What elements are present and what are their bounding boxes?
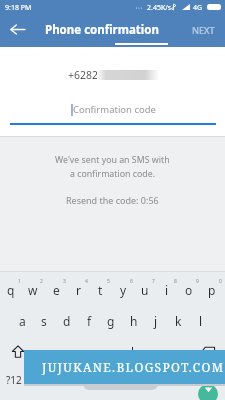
staticText: NEXT	[192, 24, 215, 36]
button[interactable]: d	[56, 305, 78, 336]
staticText: o	[185, 282, 193, 298]
staticText: p	[208, 282, 216, 298]
button[interactable]: Comma	[33, 367, 57, 398]
button[interactable]: h	[123, 305, 145, 336]
staticText: b	[131, 344, 139, 360]
staticText: m	[174, 344, 186, 360]
button[interactable]: Backspace	[190, 336, 225, 367]
staticText: Resend the code: 0:56	[66, 194, 159, 206]
button[interactable]: NEXT	[182, 14, 225, 45]
staticText: Phone confirmation	[45, 22, 159, 38]
staticText: +6282	[68, 68, 99, 82]
button[interactable]: f	[78, 305, 100, 336]
button[interactable]: s	[33, 305, 55, 336]
staticText: i	[165, 282, 169, 298]
button[interactable]: g	[100, 305, 122, 336]
button[interactable]: 6	[112, 274, 134, 305]
button[interactable]: k	[167, 305, 189, 336]
button[interactable]: x	[57, 336, 79, 367]
staticText: ,	[44, 372, 47, 387]
button[interactable]: 8	[156, 274, 178, 305]
staticText: 6	[130, 278, 133, 285]
staticText: h	[130, 313, 138, 329]
staticText: c	[87, 344, 93, 360]
staticText: 8	[174, 278, 177, 285]
button[interactable]: Emoji	[57, 364, 81, 395]
button[interactable]: Shift	[0, 336, 35, 367]
button[interactable]: z	[35, 336, 57, 367]
button[interactable]: 4	[67, 274, 89, 305]
staticText: 2	[40, 278, 43, 285]
staticText: z	[43, 344, 49, 360]
button[interactable]: ?12	[0, 367, 28, 398]
staticText: 0	[219, 278, 222, 285]
button[interactable]: Period	[165, 367, 189, 398]
button[interactable]: c	[79, 336, 101, 367]
staticText: 3	[63, 278, 66, 285]
staticText: v	[110, 344, 117, 360]
button[interactable]: 5	[89, 274, 111, 305]
button[interactable]: j	[145, 305, 167, 336]
staticText: k	[175, 313, 182, 329]
staticText: We've sent you an SMS with	[55, 154, 170, 166]
button[interactable]: 7	[134, 274, 156, 305]
staticText: 7	[152, 278, 155, 285]
button[interactable]: b	[124, 336, 146, 367]
staticText: 1	[18, 278, 21, 285]
button[interactable]: l	[190, 305, 212, 336]
button[interactable]: 0	[201, 274, 223, 305]
staticText: ?12	[6, 373, 22, 387]
staticText: w	[28, 282, 38, 298]
staticText: f	[87, 313, 92, 329]
staticText: e	[53, 282, 60, 298]
staticText: a confirmation code.	[70, 168, 156, 180]
staticText: 2.45K/s	[147, 3, 172, 13]
staticText: g	[107, 313, 115, 329]
button[interactable]: Enter	[188, 364, 225, 400]
staticText: JUJUKANE.BLOGSPOT.COM	[42, 359, 225, 375]
button[interactable]: a	[11, 305, 33, 336]
button[interactable]: Back	[0, 14, 34, 45]
staticText: Confirmation code	[73, 103, 156, 116]
staticText: t	[98, 282, 103, 298]
button[interactable]: v	[102, 336, 124, 367]
staticText: l	[199, 313, 203, 329]
staticText: 4	[85, 278, 88, 285]
staticText: 4G	[193, 3, 203, 13]
staticText: s	[41, 313, 47, 329]
staticText: j	[154, 313, 158, 329]
button[interactable]: Space	[83, 377, 158, 390]
staticText: .	[176, 372, 179, 387]
button[interactable]: 3	[45, 274, 67, 305]
button[interactable]: 2	[22, 274, 44, 305]
staticText: d	[63, 313, 71, 329]
button[interactable]: 1	[0, 274, 22, 305]
staticText: 9	[196, 278, 199, 285]
staticText: n	[153, 344, 161, 360]
button[interactable]: n	[146, 336, 168, 367]
staticText: a	[19, 313, 26, 329]
staticText: x	[65, 344, 72, 360]
staticText: y	[120, 282, 127, 298]
staticText: q	[7, 282, 15, 298]
staticText: r	[76, 282, 81, 298]
button[interactable]: 9	[178, 274, 200, 305]
staticText: 9:18 PM	[5, 3, 32, 13]
button[interactable]: m	[169, 336, 191, 367]
staticText: u	[141, 282, 149, 298]
staticText: 5	[107, 278, 110, 285]
